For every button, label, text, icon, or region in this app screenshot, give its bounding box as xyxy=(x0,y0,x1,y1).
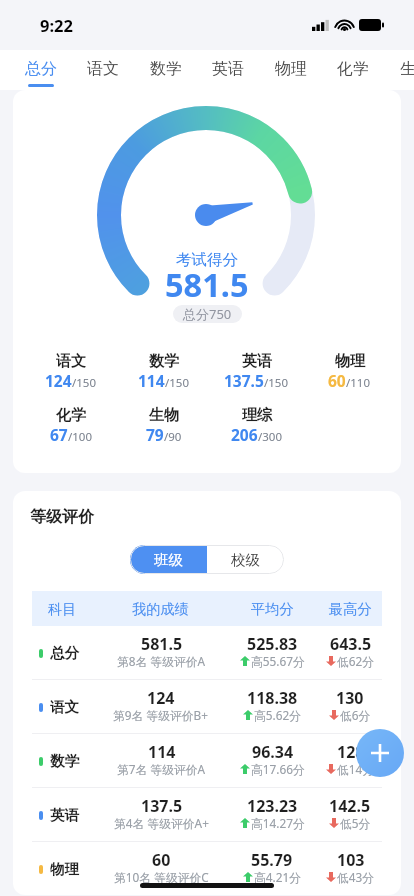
staticText: 高14.27分 xyxy=(251,815,305,831)
button[interactable]: 英语 xyxy=(202,50,254,90)
staticText: 低6分 xyxy=(340,707,371,723)
staticText: 化学 xyxy=(337,59,369,79)
button[interactable]: 物理 xyxy=(13,842,401,895)
staticText: /150 xyxy=(264,375,289,391)
staticText: /110 xyxy=(346,375,371,391)
staticText: 数学 xyxy=(150,59,182,79)
staticText: 第4名 等级评价A+ xyxy=(114,815,209,831)
staticText: 高17.66分 xyxy=(251,761,305,777)
staticText: 643.5 xyxy=(330,633,372,655)
staticText: 数学 xyxy=(149,352,179,371)
staticText: 9:22 xyxy=(40,14,73,36)
staticText: 物理 xyxy=(275,59,307,79)
staticText: 语文 xyxy=(56,352,86,371)
staticText: 生物 xyxy=(149,406,179,425)
staticText: 118.38 xyxy=(247,687,298,709)
staticText: 第9名 等级评价B+ xyxy=(113,707,209,723)
staticText: 137.5 xyxy=(141,795,183,817)
staticText: 525.83 xyxy=(247,633,298,655)
staticText: 我的成绩 xyxy=(132,600,189,618)
staticText: 124 xyxy=(45,370,72,391)
staticText: 理综 xyxy=(242,406,272,425)
staticText: 60 xyxy=(152,849,171,871)
button[interactable]: 班级 xyxy=(130,545,207,574)
staticText: 英语 xyxy=(50,806,79,824)
staticText: /100 xyxy=(68,429,93,445)
staticText: 低5分 xyxy=(340,815,371,831)
staticText: 79 xyxy=(146,424,164,445)
staticText: 班级 xyxy=(154,551,183,569)
staticText: 123.23 xyxy=(247,795,298,817)
staticText: 等级评价 xyxy=(30,507,94,527)
button[interactable]: 语文 xyxy=(77,50,129,90)
staticText: 114 xyxy=(138,370,165,391)
staticText: 高5.62分 xyxy=(254,707,301,723)
staticText: 高55.67分 xyxy=(251,653,305,669)
staticText: 总分 xyxy=(50,644,79,662)
staticText: 124 xyxy=(147,687,175,709)
staticText: 考试得分 xyxy=(176,250,238,270)
button[interactable]: 化学 xyxy=(327,50,379,90)
staticText: 低62分 xyxy=(337,653,375,669)
staticText: 581.5 xyxy=(165,262,249,306)
button[interactable]: Add xyxy=(356,729,404,777)
staticText: 物理 xyxy=(50,860,79,878)
button[interactable]: 数学 xyxy=(13,734,401,787)
staticText: 206 xyxy=(231,424,258,445)
staticText: 科目 xyxy=(48,600,77,618)
button[interactable]: 数学 xyxy=(140,50,192,90)
staticText: 英语 xyxy=(242,352,272,371)
staticText: 总分 xyxy=(25,59,57,79)
staticText: 第10名 等级评价C xyxy=(114,869,209,885)
staticText: 低43分 xyxy=(337,869,375,885)
button[interactable]: 总分 xyxy=(13,626,401,679)
staticText: 581.5 xyxy=(141,633,183,655)
button[interactable]: 物理 xyxy=(265,50,317,90)
staticText: /90 xyxy=(164,429,182,445)
staticText: 英语 xyxy=(212,59,244,79)
staticText: 第8名 等级评价A xyxy=(117,653,206,669)
staticText: 114 xyxy=(148,741,176,763)
staticText: 最高分 xyxy=(329,600,372,618)
staticText: 物理 xyxy=(335,352,365,371)
button[interactable]: 英语 xyxy=(13,788,401,841)
staticText: 校级 xyxy=(231,551,260,569)
button[interactable]: 生物 xyxy=(390,50,414,90)
staticText: 语文 xyxy=(50,698,79,716)
staticText: /300 xyxy=(258,429,283,445)
staticText: 语文 xyxy=(87,59,119,79)
staticText: 67 xyxy=(50,424,68,445)
staticText: 60 xyxy=(328,370,346,391)
staticText: 数学 xyxy=(50,752,79,770)
staticText: /150 xyxy=(72,375,97,391)
staticText: 总分750 xyxy=(183,305,232,323)
staticText: /150 xyxy=(165,375,190,391)
staticText: 生物 xyxy=(400,59,414,79)
button[interactable]: 校级 xyxy=(207,545,284,574)
staticText: 第7名 等级评价A xyxy=(117,761,206,777)
staticText: 平均分 xyxy=(251,600,294,618)
button[interactable]: 语文 xyxy=(13,680,401,733)
staticText: 55.79 xyxy=(251,849,293,871)
button[interactable]: 总分 xyxy=(15,50,67,90)
staticText: 130 xyxy=(336,687,364,709)
staticText: 142.5 xyxy=(329,795,371,817)
staticText: 137.5 xyxy=(224,370,264,391)
staticText: 128 xyxy=(337,741,365,763)
staticText: 低14分 xyxy=(337,761,375,777)
staticText: 103 xyxy=(337,849,365,871)
staticText: 高4.21分 xyxy=(254,869,301,885)
staticText: 化学 xyxy=(56,406,86,425)
staticText: 96.34 xyxy=(252,741,294,763)
